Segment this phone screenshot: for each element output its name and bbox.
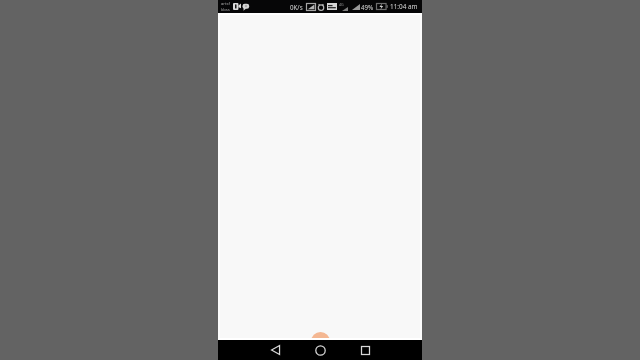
staticText: artsf — [221, 1, 231, 7]
staticText: 49% — [361, 3, 374, 11]
button[interactable]: Back — [262, 343, 288, 357]
staticText: 0K/s — [290, 3, 303, 11]
button[interactable]: Recent apps — [352, 343, 378, 357]
button[interactable]: Home — [307, 343, 333, 357]
staticText: 11:04 am — [390, 2, 418, 11]
staticText: kbss — [221, 7, 230, 13]
staticText: 4G — [339, 2, 344, 7]
button[interactable]: Add — [311, 332, 330, 351]
